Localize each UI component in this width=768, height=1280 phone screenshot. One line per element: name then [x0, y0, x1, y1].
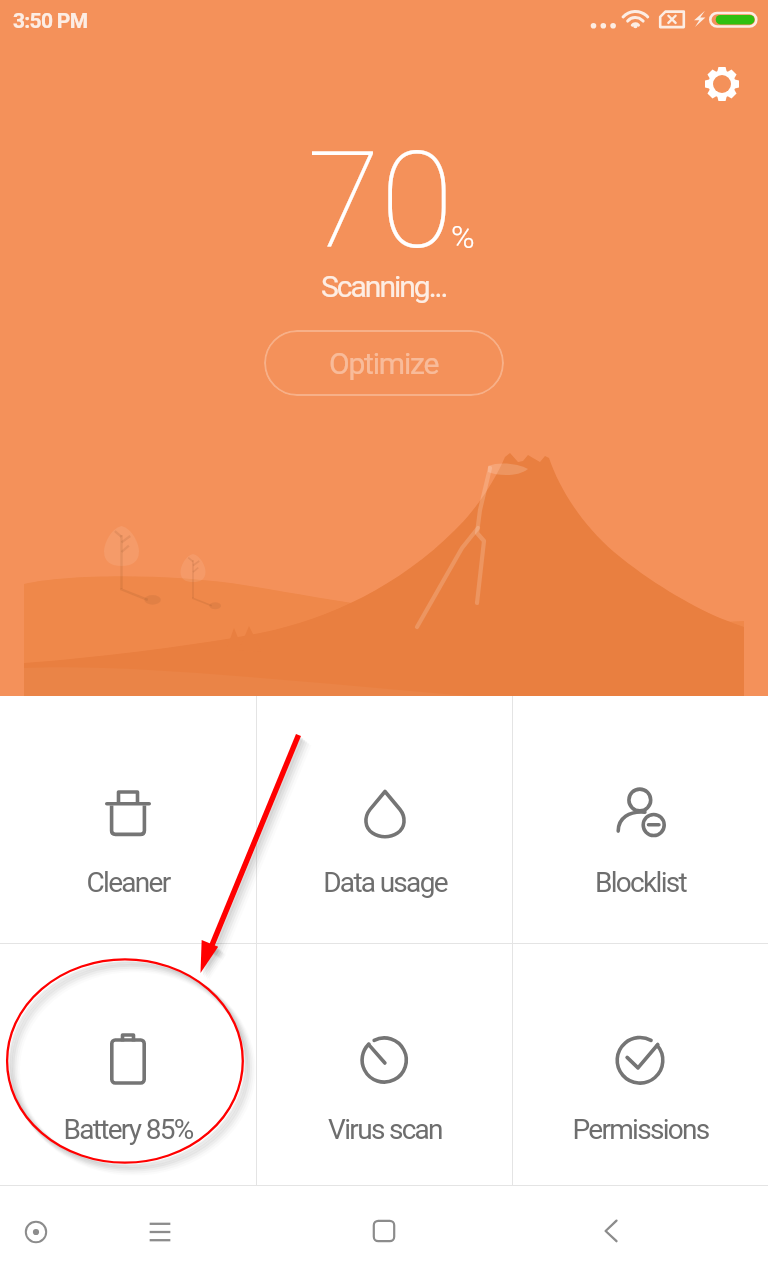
staticText: Data usage — [323, 866, 447, 899]
button[interactable]: Home — [350, 1197, 418, 1265]
button[interactable]: Optimize — [264, 330, 504, 396]
staticText: 70 — [307, 123, 454, 280]
staticText: Battery 85% — [63, 1113, 193, 1146]
staticText: Optimize — [329, 346, 439, 381]
button[interactable]: Back — [577, 1197, 645, 1265]
button[interactable]: Data usage — [257, 696, 512, 943]
button[interactable]: Settings — [686, 48, 758, 120]
staticText: Permissions — [572, 1113, 709, 1146]
staticText: 3:50 PM — [13, 9, 88, 34]
button[interactable]: Battery 85% — [0, 944, 256, 1185]
button[interactable]: Permissions — [513, 944, 768, 1185]
button[interactable]: Recents — [126, 1198, 194, 1266]
staticText: Scanning... — [321, 269, 447, 304]
button[interactable]: Blocklist — [513, 696, 768, 943]
staticText: Cleaner — [86, 866, 170, 899]
button[interactable]: Cleaner — [0, 696, 256, 943]
staticText: Virus scan — [328, 1113, 442, 1146]
staticText: % — [451, 218, 475, 256]
button[interactable]: Virus scan — [257, 944, 512, 1185]
staticText: Blocklist — [595, 866, 686, 899]
button[interactable]: Assistant — [2, 1198, 70, 1266]
